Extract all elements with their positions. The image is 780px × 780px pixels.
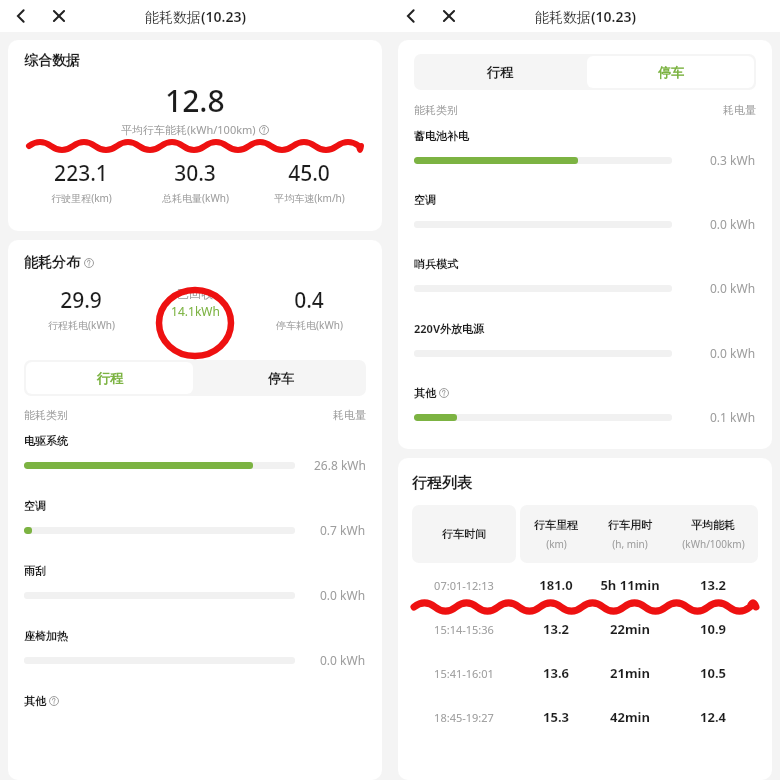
staticText: 平均能耗 — [691, 518, 735, 532]
staticText: (h, min) — [612, 537, 648, 551]
staticText: 耗电量 — [333, 408, 366, 422]
staticText: 能耗分布 — [24, 254, 80, 272]
staticText: 0.4 — [294, 286, 324, 315]
staticText: 0.0 kWh — [710, 345, 756, 361]
button[interactable]: Back — [400, 5, 422, 27]
button[interactable]: 停车 — [587, 56, 754, 88]
staticText: 能耗类别 — [414, 103, 458, 117]
button[interactable]: Close — [438, 5, 460, 27]
button[interactable]: Back — [10, 5, 32, 27]
staticText: 行车里程 — [534, 518, 578, 532]
staticText: 13.2 — [700, 576, 726, 594]
button[interactable]: 07:01-12:13 — [412, 563, 758, 607]
staticText: 42min — [610, 708, 650, 726]
staticText: 18:45-19:27 — [434, 710, 494, 725]
staticText: 223.1 — [54, 159, 108, 188]
staticText: (km) — [546, 537, 567, 551]
staticText: 220V外放电源 — [414, 321, 485, 336]
staticText: 行驶里程(km) — [51, 191, 112, 205]
staticText: 0.0 kWh — [710, 280, 756, 296]
staticText: 综合数据 — [24, 52, 80, 70]
staticText: 行程 — [97, 370, 123, 386]
staticText: 15.3 — [543, 708, 569, 726]
staticText: 26.8 kWh — [314, 457, 366, 473]
staticText: 总耗电量(kWh) — [162, 191, 229, 205]
staticText: 蓄电池补电 — [414, 129, 469, 143]
staticText: 15:14-15:36 — [434, 622, 494, 637]
staticText: 0.3 kWh — [710, 152, 756, 168]
staticText: 电驱系统 — [24, 434, 68, 448]
staticText: 平均行车能耗(kWh/100km) — [121, 122, 256, 137]
staticText: 22min — [610, 620, 650, 638]
staticText: 空调 — [414, 193, 436, 207]
staticText: 耗电量 — [723, 103, 756, 117]
button[interactable]: 15:41-16:01 — [412, 651, 758, 695]
staticText: 12.8 — [165, 80, 225, 121]
staticText: 12.4 — [700, 708, 726, 726]
staticText: (kWh/100km) — [682, 537, 745, 551]
staticText: 10.5 — [700, 664, 726, 682]
staticText: 行车时间 — [442, 527, 486, 541]
button[interactable]: 行程 — [26, 362, 193, 394]
staticText: 停车 — [658, 64, 684, 80]
staticText: 平均车速(km/h) — [274, 191, 345, 205]
staticText: 其他 — [24, 694, 46, 708]
button[interactable]: 18:45-19:27 — [412, 695, 758, 739]
staticText: 13.2 — [543, 620, 569, 638]
staticText: 0.7 kWh — [320, 522, 366, 538]
staticText: 停车耗电(kWh) — [276, 318, 343, 332]
staticText: 能耗数据(10.23) — [535, 7, 636, 26]
button[interactable]: 停车 — [197, 362, 364, 394]
staticText: 15:41-16:01 — [434, 666, 494, 681]
staticText: 行车用时 — [608, 518, 652, 532]
staticText: 空调 — [24, 499, 46, 513]
staticText: 14.1kWh — [171, 303, 220, 319]
staticText: 行程 — [487, 64, 513, 80]
staticText: 29.9 — [60, 286, 102, 315]
staticText: 行程列表 — [412, 474, 472, 493]
staticText: 0.0 kWh — [320, 587, 366, 603]
staticText: 5h 11min — [600, 576, 660, 594]
staticText: 其他 — [414, 386, 436, 400]
staticText: 座椅加热 — [24, 629, 68, 643]
staticText: 能耗类别 — [24, 408, 68, 422]
staticText: 181.0 — [539, 576, 573, 594]
staticText: 哨兵模式 — [414, 257, 458, 271]
staticText: 停车 — [268, 370, 294, 386]
button[interactable]: Close — [48, 5, 70, 27]
staticText: 13.6 — [543, 664, 569, 682]
staticText: 10.9 — [700, 620, 726, 638]
staticText: 0.1 kWh — [710, 409, 756, 425]
staticText: 行程耗电(kWh) — [48, 318, 115, 332]
staticText: 能耗数据(10.23) — [145, 7, 246, 26]
button[interactable]: 行程 — [416, 56, 583, 88]
staticText: 0.0 kWh — [320, 652, 366, 668]
staticText: 45.0 — [288, 159, 330, 188]
staticText: 07:01-12:13 — [434, 578, 494, 593]
staticText: 21min — [610, 664, 650, 682]
staticText: 雨刮 — [24, 564, 46, 578]
button[interactable]: 15:14-15:36 — [412, 607, 758, 651]
staticText: 0.0 kWh — [710, 216, 756, 232]
staticText: 已回收 — [177, 286, 213, 301]
staticText: 30.3 — [174, 159, 216, 188]
